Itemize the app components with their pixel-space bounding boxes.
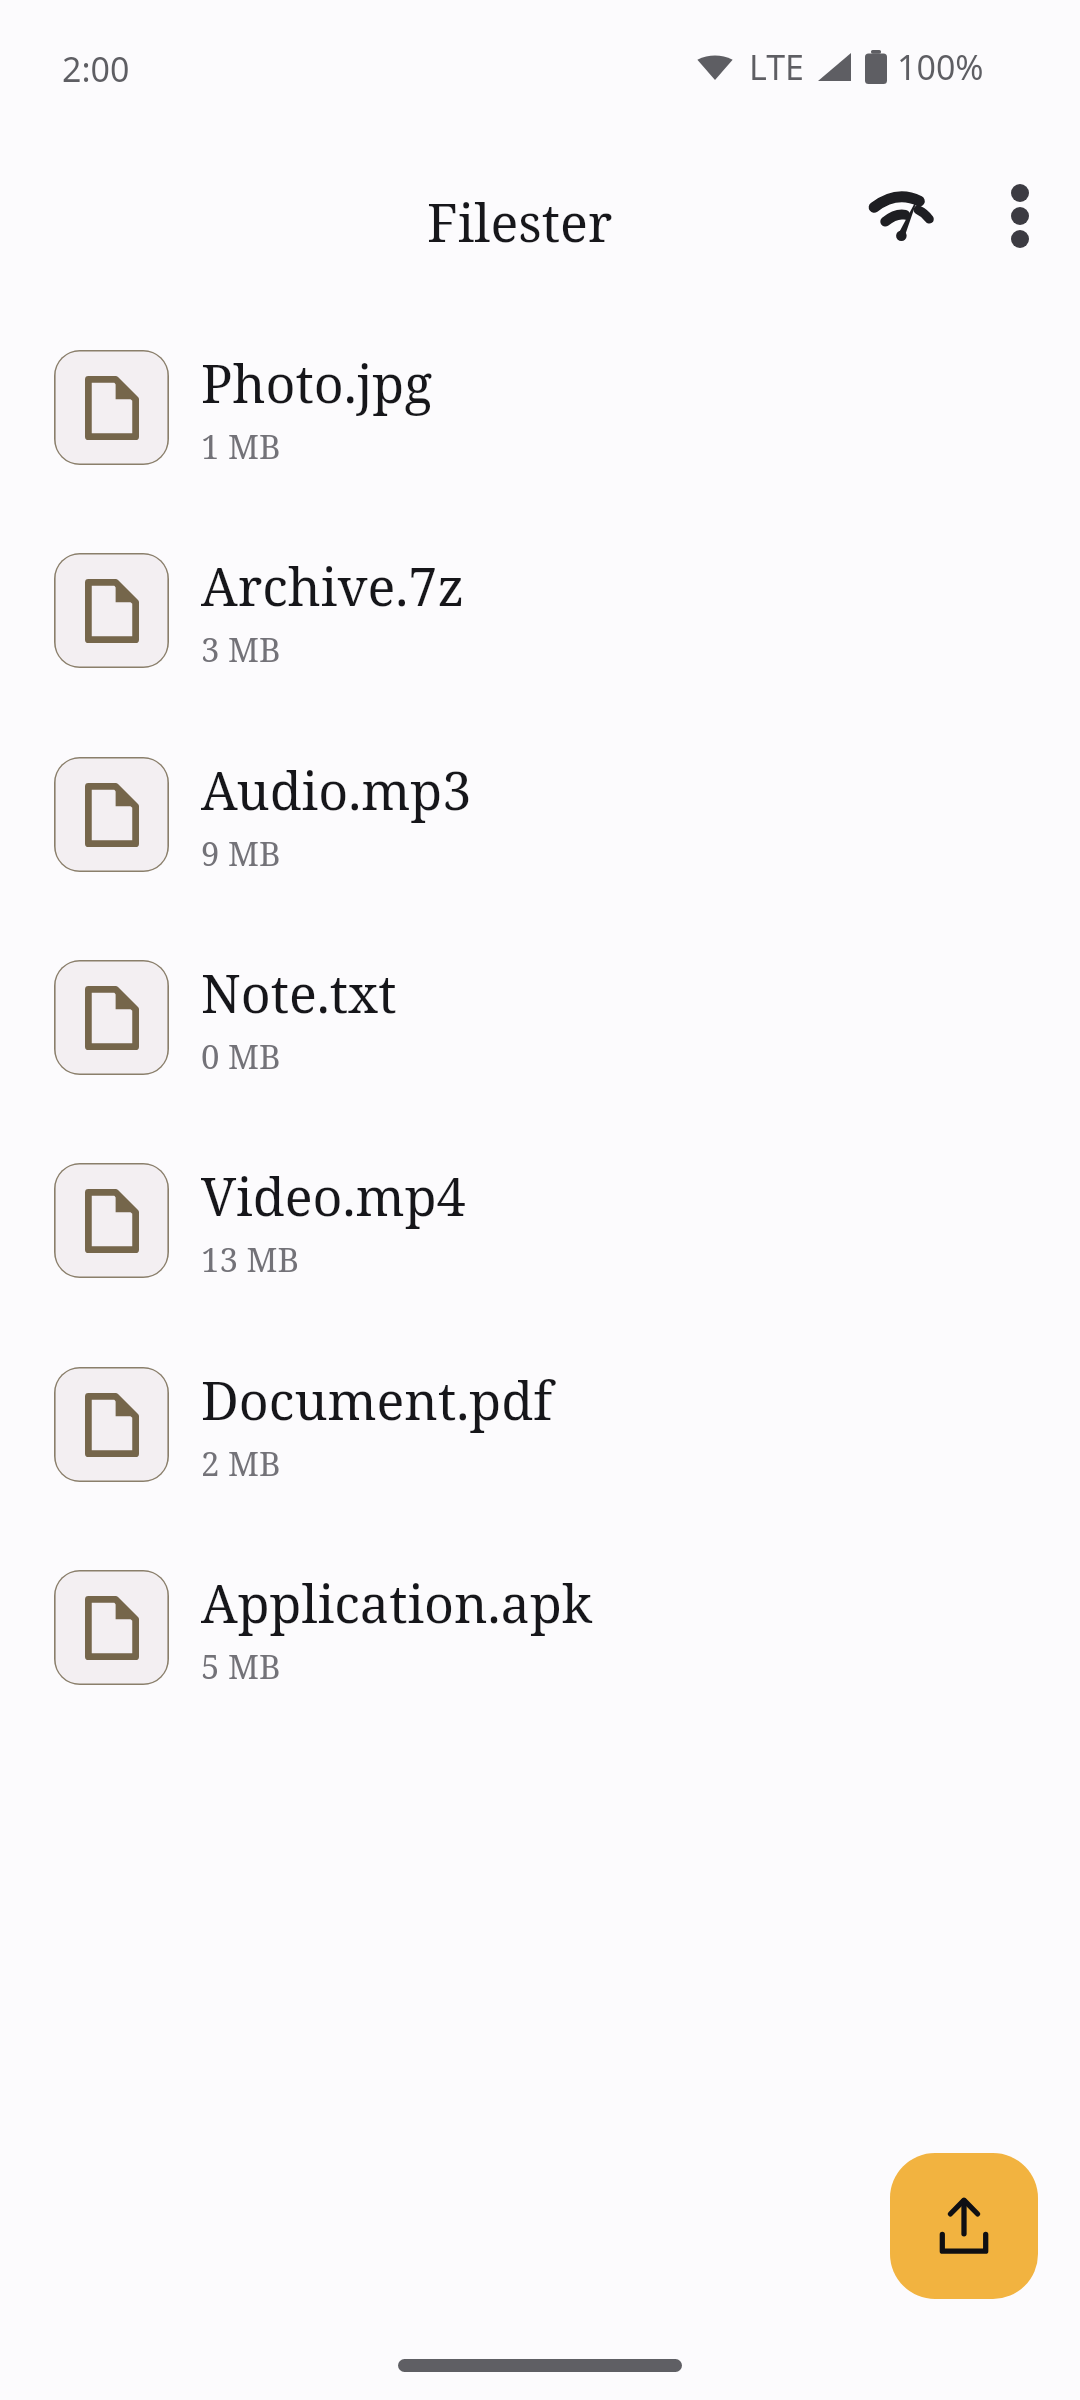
- staticText: Audio.mp3: [201, 754, 472, 825]
- staticText: 9 MB: [201, 831, 281, 876]
- staticText: Photo.jpg: [201, 347, 433, 418]
- staticText: Video.mp4: [201, 1160, 466, 1231]
- staticText: 2 MB: [201, 1441, 281, 1486]
- staticText: Document.pdf: [201, 1364, 553, 1435]
- staticText: Filester: [427, 186, 613, 257]
- button[interactable]: Note.txt: [0, 916, 1080, 1119]
- button[interactable]: Document.pdf: [0, 1323, 1080, 1526]
- staticText: 100%: [897, 44, 984, 90]
- button[interactable]: Upload: [890, 2153, 1038, 2299]
- button[interactable]: Audio.mp3: [0, 713, 1080, 916]
- staticText: 13 MB: [201, 1237, 300, 1282]
- staticText: Note.txt: [201, 957, 397, 1028]
- button[interactable]: More options: [956, 152, 1080, 280]
- staticText: 2:00: [62, 46, 130, 92]
- staticText: 5 MB: [201, 1644, 281, 1689]
- button[interactable]: Archive.7z: [0, 509, 1080, 712]
- button[interactable]: Network speed check: [838, 152, 966, 280]
- button[interactable]: Photo.jpg: [0, 306, 1080, 509]
- staticText: 3 MB: [201, 627, 281, 672]
- button[interactable]: Application.apk: [0, 1526, 1080, 1729]
- staticText: Application.apk: [201, 1567, 593, 1638]
- staticText: LTE: [749, 44, 804, 90]
- staticText: 0 MB: [201, 1034, 281, 1079]
- button[interactable]: Video.mp4: [0, 1119, 1080, 1322]
- staticText: 1 MB: [201, 424, 281, 469]
- staticText: Archive.7z: [201, 550, 464, 621]
